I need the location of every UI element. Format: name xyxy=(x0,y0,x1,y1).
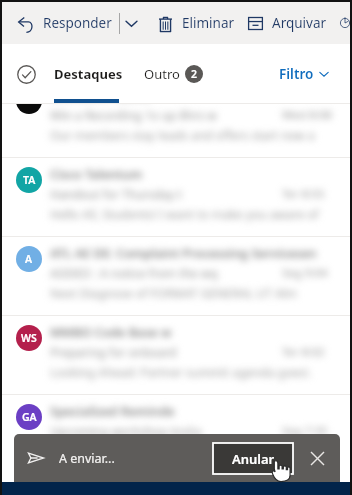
staticText: A enviar... xyxy=(59,450,115,467)
button[interactable]: Filtro xyxy=(279,65,329,83)
staticText: Arquivar xyxy=(272,14,327,32)
button[interactable]: WS xyxy=(2,316,350,394)
staticText: Win a Recording 1x up 8hrs w xyxy=(50,107,217,123)
staticText: Cisco Talentum xyxy=(50,166,143,183)
button[interactable]: Arquivar xyxy=(248,14,327,32)
staticText: Outro xyxy=(144,65,180,83)
button[interactable]: GA xyxy=(2,395,350,471)
staticText: TA xyxy=(23,173,36,187)
staticText: Hello All, Students! I want to make you … xyxy=(50,206,319,222)
staticText: Our members stay leads and offers start … xyxy=(50,127,315,143)
staticText: ADDED : A notice from the wq xyxy=(50,265,218,281)
staticText: Eliminar xyxy=(182,14,235,32)
button[interactable]: Mais opções de resposta xyxy=(120,8,142,38)
button[interactable]: Adiar xyxy=(340,14,350,32)
staticText: 2 xyxy=(191,67,198,81)
button[interactable]: Responder xyxy=(18,14,112,32)
staticText: Filtro xyxy=(279,65,314,83)
button[interactable]: Microsoft Teams xyxy=(2,104,350,157)
button[interactable]: Caixa de Entrada Destaques xyxy=(17,65,36,84)
button[interactable]: Destaques xyxy=(54,65,123,83)
staticText: Responder xyxy=(43,14,112,32)
staticText: Preparing for onboard xyxy=(50,344,177,360)
staticText: Specialized Reminde xyxy=(50,403,175,420)
staticText: Ter 8:02 xyxy=(282,344,325,360)
staticText: Handout for Thursday t xyxy=(50,186,182,202)
staticText: Ter 8:55 xyxy=(282,186,325,202)
button[interactable]: A xyxy=(2,237,350,315)
staticText: MMBO Code Base w xyxy=(50,324,172,341)
button[interactable]: Anular xyxy=(213,443,293,474)
button[interactable]: Fechar xyxy=(305,446,329,470)
staticText: Looking Ahead: Partner summit agenda goe… xyxy=(50,364,312,380)
staticText: Destaques xyxy=(54,65,123,83)
staticText: Anular xyxy=(232,450,275,468)
staticText: A xyxy=(25,252,33,266)
button[interactable]: Eliminar xyxy=(159,14,235,32)
staticText: ATL AE DE: Complaint Processing Services… xyxy=(50,245,317,262)
button[interactable]: TA xyxy=(2,158,350,236)
staticText: Seg 9:04 xyxy=(282,265,328,281)
button[interactable]: Outro xyxy=(144,65,203,83)
staticText: Next Diagnose of FORMAT GENERAL UT Alm xyxy=(50,285,298,301)
staticText: GA xyxy=(22,410,37,424)
staticText: Seg 7:35 xyxy=(282,423,328,439)
staticText: Our team is finalising the presentation xyxy=(50,443,267,459)
staticText: Upcoming workshop invita xyxy=(50,423,202,439)
staticText: WS xyxy=(21,331,37,345)
staticText: Wed 8:08 xyxy=(282,107,332,123)
